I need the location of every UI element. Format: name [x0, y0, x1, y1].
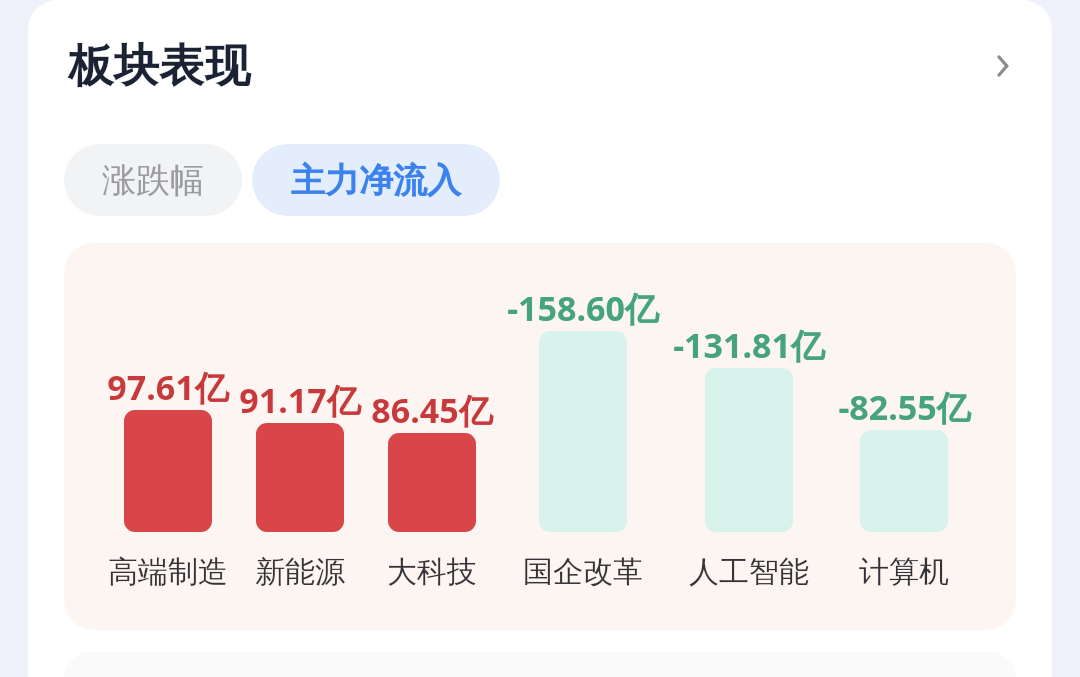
- staticText: 86.45亿: [371, 387, 493, 433]
- staticText: 板块表现: [68, 38, 250, 95]
- staticText: 91.17亿: [239, 377, 361, 423]
- staticText: -131.81亿: [673, 322, 825, 368]
- button[interactable]: 涨跌幅: [64, 144, 242, 216]
- staticText: 国企改革: [523, 553, 643, 591]
- staticText: 高端制造: [108, 553, 228, 591]
- button[interactable]: 主力净流入: [252, 144, 500, 216]
- button[interactable]: 97.61亿: [64, 243, 1016, 630]
- button[interactable]: 查看更多板块表现: [976, 40, 1028, 92]
- staticText: -158.60亿: [507, 285, 659, 331]
- staticText: 计算机: [859, 553, 949, 591]
- staticText: 人工智能: [689, 553, 809, 591]
- staticText: 涨跌幅: [102, 159, 204, 202]
- staticText: 大科技: [387, 553, 477, 591]
- staticText: -82.55亿: [838, 384, 971, 430]
- staticText: 主力净流入: [291, 159, 461, 202]
- staticText: 新能源: [255, 553, 345, 591]
- staticText: 97.61亿: [107, 364, 229, 410]
